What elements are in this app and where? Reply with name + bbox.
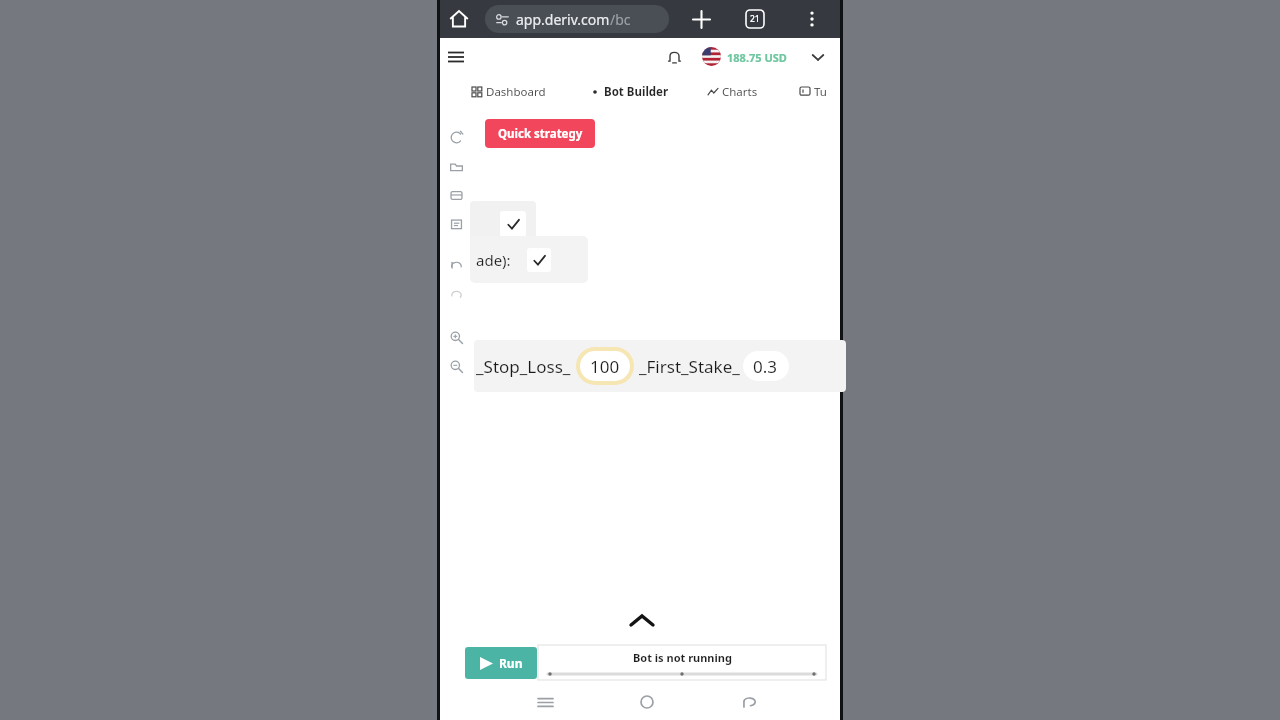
staticText: Quick strategy	[498, 126, 583, 142]
button[interactable]: Undo	[445, 255, 467, 277]
button[interactable]: Save	[445, 184, 467, 206]
button[interactable]: Account menu	[806, 45, 830, 69]
button[interactable]: Bot Builder	[588, 76, 671, 108]
button[interactable]: Dashboard	[470, 76, 548, 108]
button[interactable]: Collapse panel	[625, 610, 659, 630]
staticText: 21	[750, 13, 760, 25]
staticText: Tu	[814, 84, 827, 100]
button[interactable]: New tab	[689, 7, 713, 31]
button[interactable]: 0.3	[743, 351, 789, 381]
staticText: Run	[499, 655, 523, 671]
staticText: _First_Stake_	[639, 355, 740, 378]
button[interactable]: Bot is not running	[538, 645, 826, 680]
button[interactable]: Back	[736, 689, 762, 715]
button[interactable]: Notifications	[662, 45, 686, 69]
button[interactable]: Run	[465, 647, 537, 679]
button[interactable]: app.deriv.com	[485, 5, 669, 33]
button[interactable]: More options	[800, 7, 824, 31]
button[interactable]: Charts	[706, 76, 760, 108]
button[interactable]: Home	[447, 7, 471, 31]
staticText: Dashboard	[486, 84, 546, 100]
button[interactable]: Zoom in	[445, 326, 467, 348]
staticText: 188.75 USD	[727, 50, 787, 65]
button[interactable]: Zoom out	[445, 355, 467, 377]
button[interactable]: 188.75 USD	[727, 38, 787, 76]
button[interactable]: Open file	[445, 155, 467, 177]
staticText: Charts	[722, 84, 758, 100]
button[interactable]: Tu	[798, 76, 829, 108]
button[interactable]: Reset	[445, 126, 467, 148]
button[interactable]: 100	[580, 351, 630, 381]
staticText: _Stop_Loss_	[476, 355, 571, 378]
staticText: 100	[590, 355, 620, 378]
staticText: ade):	[476, 250, 511, 270]
button[interactable]: Sort blocks	[445, 213, 467, 235]
staticText: Bot Builder	[604, 84, 669, 100]
staticText: /bc	[610, 10, 631, 29]
button[interactable]: ade):	[470, 236, 588, 283]
staticText: 0.3	[753, 355, 778, 378]
button[interactable]: Recent apps	[532, 689, 558, 715]
button[interactable]: Menu	[444, 45, 468, 69]
staticText: Bot is not running	[633, 650, 732, 665]
staticText: app.deriv.com	[516, 10, 610, 29]
button[interactable]: Home	[634, 689, 660, 715]
button[interactable]: Tabs	[745, 9, 765, 29]
button[interactable]: _Stop_Loss_	[474, 340, 846, 392]
button[interactable]: Redo	[445, 284, 467, 306]
button[interactable]	[470, 201, 536, 248]
button[interactable]: Quick strategy	[485, 119, 595, 148]
